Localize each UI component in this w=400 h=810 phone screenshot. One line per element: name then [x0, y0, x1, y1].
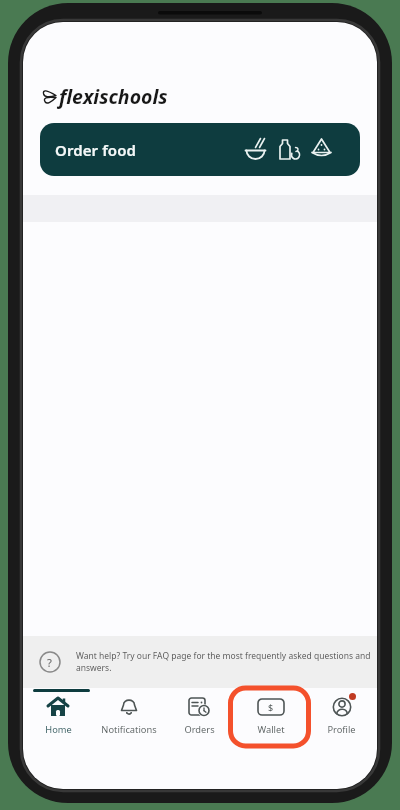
staticText: $	[268, 701, 274, 713]
staticText: ?	[47, 655, 52, 669]
staticText: Order food	[55, 140, 137, 160]
staticText: Notifications	[101, 723, 157, 736]
button[interactable]: ?	[23, 636, 377, 688]
staticText: Want help? Try our FAQ page for the most…	[76, 650, 371, 674]
button[interactable]: Order food	[40, 123, 360, 176]
staticText: flexischools	[59, 83, 168, 110]
button[interactable]: Profile	[306, 688, 377, 736]
staticText: Wallet	[257, 723, 285, 736]
button[interactable]: Orders	[164, 688, 235, 736]
staticText: Profile	[327, 723, 356, 736]
staticText: Orders	[184, 723, 215, 736]
staticText: Home	[45, 723, 72, 736]
button[interactable]: Notifications	[93, 688, 164, 736]
button[interactable]: Home	[23, 688, 93, 736]
button[interactable]: $	[235, 688, 306, 736]
